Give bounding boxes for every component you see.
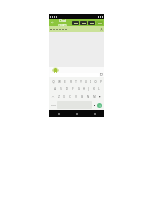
button[interactable]: U <box>83 78 88 85</box>
button[interactable]: X <box>61 93 67 101</box>
button[interactable]: shift <box>50 93 56 101</box>
button[interactable]: P <box>98 78 103 85</box>
button[interactable]: L <box>96 85 101 93</box>
button[interactable]: Chat room <box>55 19 70 26</box>
staticText: O <box>94 80 97 84</box>
button[interactable]: Action 2 <box>80 21 87 25</box>
button[interactable]: R <box>68 78 73 85</box>
button[interactable]: O <box>93 78 98 85</box>
staticText: Q <box>52 80 55 84</box>
button[interactable]: del <box>97 93 103 101</box>
button[interactable]: Y <box>78 78 83 85</box>
button[interactable]: Z <box>56 93 61 101</box>
staticText: X <box>63 95 65 99</box>
button[interactable]: I <box>88 78 93 85</box>
staticText: L <box>98 87 100 91</box>
staticText: G <box>78 87 80 91</box>
staticText: E <box>64 80 66 84</box>
staticText: S <box>60 87 62 91</box>
staticText: R <box>70 80 72 84</box>
staticText: M <box>93 95 96 99</box>
button[interactable]: Attach <box>100 73 103 76</box>
staticText: Y <box>80 80 82 84</box>
button[interactable]: Action 3 <box>88 21 95 25</box>
staticText: D <box>66 87 68 91</box>
button[interactable]: E <box>62 78 68 85</box>
button[interactable]: A <box>52 85 58 93</box>
staticText: F <box>72 87 74 91</box>
staticText: A <box>54 87 56 91</box>
staticText: U <box>85 80 87 84</box>
staticText: C <box>69 95 71 99</box>
button[interactable]: H <box>81 85 86 93</box>
staticText: Z <box>58 95 60 99</box>
button[interactable]: Profile <box>99 26 104 32</box>
staticText: H <box>83 87 85 91</box>
button[interactable]: C <box>67 93 73 101</box>
button[interactable]: K <box>91 85 96 93</box>
button[interactable] <box>51 67 60 74</box>
button[interactable]: Symbols <box>50 101 57 109</box>
staticText: N <box>87 95 89 99</box>
staticText: T <box>75 80 77 84</box>
staticText: V <box>75 95 77 99</box>
button[interactable]: Back <box>49 19 55 26</box>
button[interactable]: J <box>86 85 91 93</box>
button[interactable]: Home <box>68 110 86 117</box>
button[interactable]: Action 1 <box>72 21 79 25</box>
button[interactable]: G <box>76 85 81 93</box>
staticText: I <box>90 80 91 84</box>
button[interactable]: T <box>73 78 78 85</box>
button[interactable]: V <box>73 93 79 101</box>
staticText: P <box>100 80 102 84</box>
button[interactable]: Period <box>92 101 97 109</box>
button[interactable]: Back <box>49 110 68 117</box>
button[interactable]: Recents <box>86 110 104 117</box>
staticText: B <box>81 95 83 99</box>
button[interactable]: F <box>70 85 76 93</box>
button[interactable]: Action 4 <box>96 21 103 25</box>
button[interactable]: Q <box>50 78 56 85</box>
staticText: ?123 <box>51 104 56 107</box>
button[interactable]: Profile <box>49 26 104 32</box>
button[interactable]: N <box>85 93 91 101</box>
staticText: K <box>93 87 95 91</box>
button[interactable]: D <box>64 85 70 93</box>
staticText: W <box>58 80 61 84</box>
staticText: Chat room <box>55 19 70 26</box>
button[interactable]: M <box>91 93 97 101</box>
button[interactable]: S <box>58 85 64 93</box>
button[interactable]: Send <box>97 103 102 108</box>
button[interactable]: W <box>56 78 62 85</box>
button[interactable]: B <box>79 93 85 101</box>
